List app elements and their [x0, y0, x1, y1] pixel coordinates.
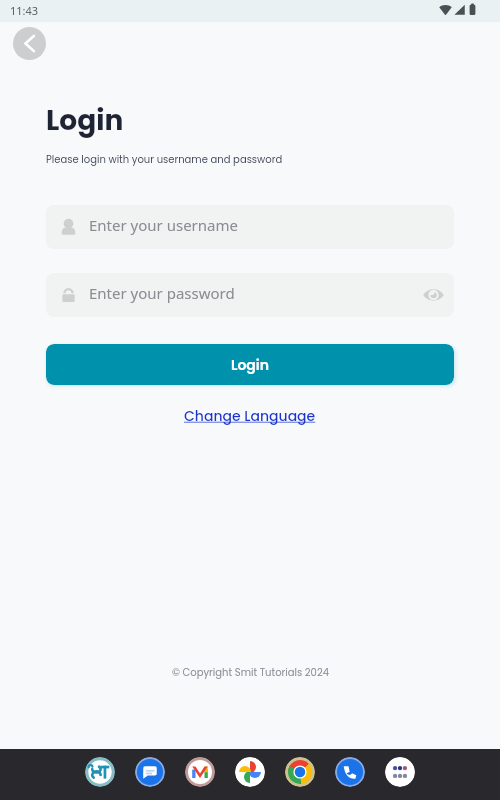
staticText: 11:43 — [10, 3, 39, 18]
staticText: Enter your password — [89, 283, 416, 303]
button[interactable]: Enter your username — [46, 205, 454, 249]
button[interactable]: Change Language — [180, 403, 320, 429]
button[interactable]: Back — [13, 27, 46, 60]
button[interactable]: Messages — [135, 757, 165, 787]
button[interactable]: All apps — [385, 757, 415, 787]
button[interactable]: Chrome — [285, 757, 315, 787]
staticText: © Copyright Smit Tutorials 2024 — [172, 665, 329, 679]
button[interactable]: Enter your password — [46, 273, 454, 317]
button[interactable]: Login — [46, 344, 454, 385]
staticText: Login — [46, 101, 124, 140]
staticText: Enter your username — [89, 215, 454, 235]
button[interactable]: Smit Tutorials — [85, 757, 115, 787]
staticText: Change Language — [184, 406, 316, 426]
staticText: Please login with your username and pass… — [46, 152, 283, 166]
button[interactable]: Gmail — [185, 757, 215, 787]
button[interactable]: Photos — [235, 757, 265, 787]
staticText: Login — [231, 355, 269, 375]
button[interactable]: Phone — [335, 757, 365, 787]
button[interactable]: Show password — [416, 278, 450, 312]
